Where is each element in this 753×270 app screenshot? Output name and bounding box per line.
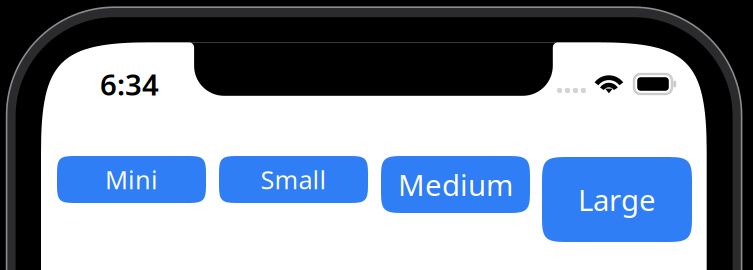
button[interactable]: Small — [219, 156, 368, 203]
staticText: Mini — [105, 163, 158, 196]
staticText: Medium — [398, 165, 513, 204]
staticText: Large — [578, 180, 656, 219]
button[interactable]: Medium — [381, 156, 530, 213]
staticText: 6:34 — [100, 64, 159, 103]
button[interactable]: Large — [542, 157, 692, 242]
staticText: Small — [260, 163, 326, 196]
button[interactable]: Mini — [57, 156, 206, 203]
